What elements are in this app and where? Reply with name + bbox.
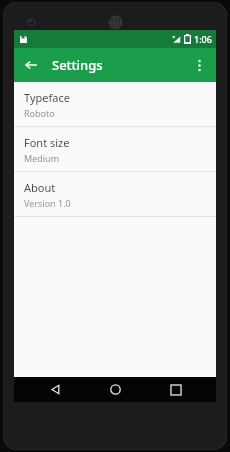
button[interactable]: Font size bbox=[14, 127, 216, 171]
staticText: About bbox=[24, 180, 56, 195]
button[interactable]: Home bbox=[95, 377, 135, 402]
staticText: Medium bbox=[24, 152, 60, 164]
button[interactable]: More options bbox=[182, 48, 216, 82]
button[interactable]: Typeface bbox=[14, 82, 216, 126]
staticText: Font size bbox=[24, 135, 70, 150]
staticText: 1:06 bbox=[194, 33, 212, 45]
button[interactable]: Recent apps bbox=[156, 377, 196, 402]
staticText: Roboto bbox=[24, 107, 55, 119]
staticText: Settings bbox=[52, 56, 103, 74]
staticText: Typeface bbox=[24, 90, 70, 105]
staticText: Version 1.0 bbox=[24, 197, 71, 209]
button[interactable]: Back bbox=[35, 377, 75, 402]
button[interactable]: Navigate up bbox=[14, 48, 48, 82]
button[interactable]: About bbox=[14, 172, 216, 216]
